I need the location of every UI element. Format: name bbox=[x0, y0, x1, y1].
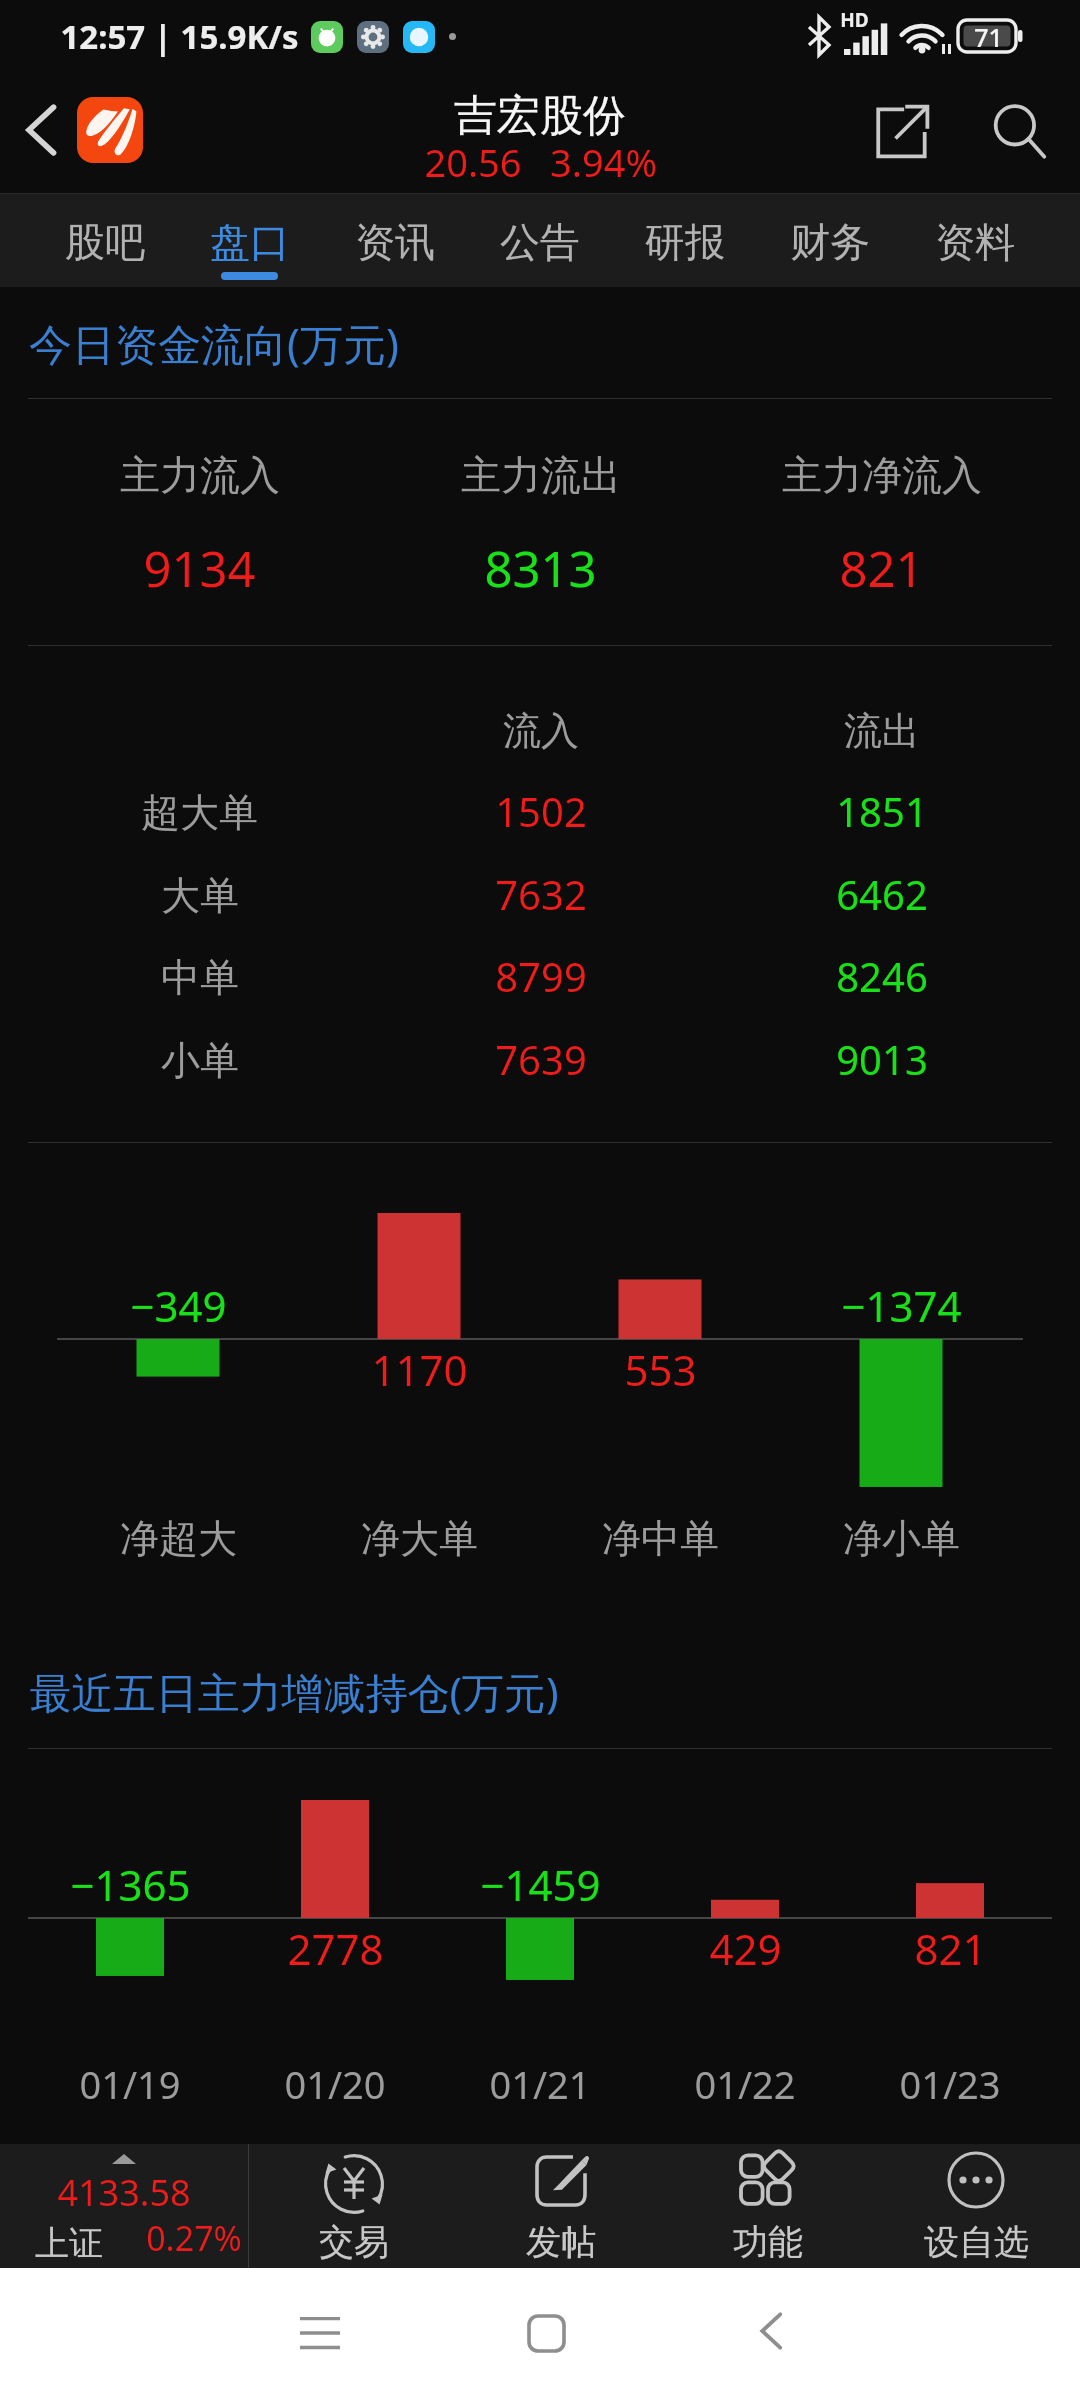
staticText: 553 bbox=[624, 1341, 697, 1398]
button[interactable]: 发帖 bbox=[457, 2144, 664, 2268]
button[interactable]: 交易 bbox=[250, 2144, 457, 2268]
staticText: 20.56 bbox=[424, 136, 522, 188]
staticText: 财务 bbox=[790, 217, 870, 267]
staticText: 吉宏股份 bbox=[454, 89, 626, 143]
staticText: 公告 bbox=[500, 217, 580, 267]
button[interactable]: 财务 bbox=[757, 193, 902, 287]
staticText: 研报 bbox=[645, 217, 725, 267]
button[interactable]: Search bbox=[971, 84, 1069, 182]
staticText: 中单 bbox=[161, 953, 239, 1002]
staticText: HD bbox=[840, 7, 869, 33]
staticText: 01/21 bbox=[489, 2058, 591, 2110]
staticText: 大单 bbox=[161, 871, 239, 920]
button[interactable]: Recents bbox=[270, 2284, 370, 2384]
staticText: 最近五日主力增减持仓(万元) bbox=[29, 1663, 559, 1720]
button[interactable]: 股吧 bbox=[33, 193, 177, 287]
staticText: 主力净流入 bbox=[782, 450, 982, 500]
staticText: 今日资金流向(万元) bbox=[29, 314, 399, 373]
staticText: 交易 bbox=[319, 2220, 389, 2264]
staticText: 流出 bbox=[844, 707, 920, 755]
staticText: 盘口 bbox=[210, 217, 290, 267]
staticText: 流入 bbox=[503, 707, 579, 755]
staticText: 上证 bbox=[35, 2222, 103, 2265]
staticText: −1374 bbox=[841, 1277, 962, 1334]
staticText: 8799 bbox=[495, 949, 587, 1003]
button[interactable]: 4133.58 bbox=[0, 2144, 248, 2268]
staticText: 71 bbox=[974, 20, 1003, 54]
staticText: 1170 bbox=[371, 1341, 468, 1398]
staticText: 设自选 bbox=[924, 2220, 1029, 2264]
button[interactable]: 盘口 bbox=[177, 193, 322, 287]
staticText: 4133.58 bbox=[57, 2168, 191, 2217]
staticText: 3.94% bbox=[550, 136, 657, 188]
staticText: 主力流出 bbox=[461, 450, 621, 500]
staticText: 6462 bbox=[836, 867, 928, 921]
button[interactable]: 功能 bbox=[664, 2144, 872, 2268]
staticText: 资讯 bbox=[355, 217, 435, 267]
staticText: 股吧 bbox=[65, 217, 145, 267]
staticText: 功能 bbox=[733, 2220, 803, 2264]
staticText: 发帖 bbox=[526, 2220, 596, 2264]
button[interactable]: 研报 bbox=[612, 193, 757, 287]
button[interactable]: 资料 bbox=[902, 193, 1047, 287]
staticText: 净小单 bbox=[843, 1514, 960, 1563]
staticText: 821 bbox=[914, 1920, 987, 1977]
staticText: 01/23 bbox=[899, 2058, 1001, 2110]
staticText: 8246 bbox=[836, 949, 928, 1003]
staticText: 429 bbox=[709, 1920, 782, 1977]
staticText: −1459 bbox=[480, 1856, 601, 1913]
button[interactable]: Share bbox=[856, 86, 948, 178]
staticText: 8313 bbox=[484, 535, 597, 602]
staticText: 9134 bbox=[143, 535, 256, 602]
staticText: 12:57 | 15.9K/s bbox=[60, 14, 299, 59]
staticText: 1502 bbox=[495, 784, 587, 838]
staticText: 主力流入 bbox=[120, 450, 280, 500]
staticText: 7632 bbox=[495, 867, 587, 921]
staticText: 9013 bbox=[836, 1032, 928, 1086]
staticText: 净超大 bbox=[120, 1514, 237, 1563]
button[interactable]: 设自选 bbox=[872, 2144, 1080, 2268]
staticText: 净中单 bbox=[602, 1514, 719, 1563]
button[interactable]: Back bbox=[721, 2281, 821, 2381]
staticText: −349 bbox=[130, 1277, 227, 1334]
staticText: 1851 bbox=[836, 784, 928, 838]
staticText: 01/20 bbox=[284, 2058, 386, 2110]
staticText: 821 bbox=[839, 535, 924, 602]
staticText: 01/19 bbox=[79, 2058, 181, 2110]
button[interactable]: 公告 bbox=[467, 193, 612, 287]
button[interactable]: Back bbox=[3, 92, 79, 168]
staticText: −1365 bbox=[70, 1856, 191, 1913]
button[interactable]: Home bbox=[77, 97, 143, 163]
staticText: 小单 bbox=[161, 1036, 239, 1085]
staticText: 2778 bbox=[287, 1920, 384, 1977]
staticText: 01/22 bbox=[694, 2058, 796, 2110]
button[interactable]: Home bbox=[496, 2283, 596, 2383]
staticText: 7639 bbox=[495, 1032, 587, 1086]
staticText: 超大单 bbox=[141, 788, 258, 837]
staticText: 0.27% bbox=[146, 2215, 242, 2261]
staticText: 资料 bbox=[935, 217, 1015, 267]
button[interactable]: 资讯 bbox=[322, 193, 467, 287]
staticText: 净大单 bbox=[361, 1514, 478, 1563]
